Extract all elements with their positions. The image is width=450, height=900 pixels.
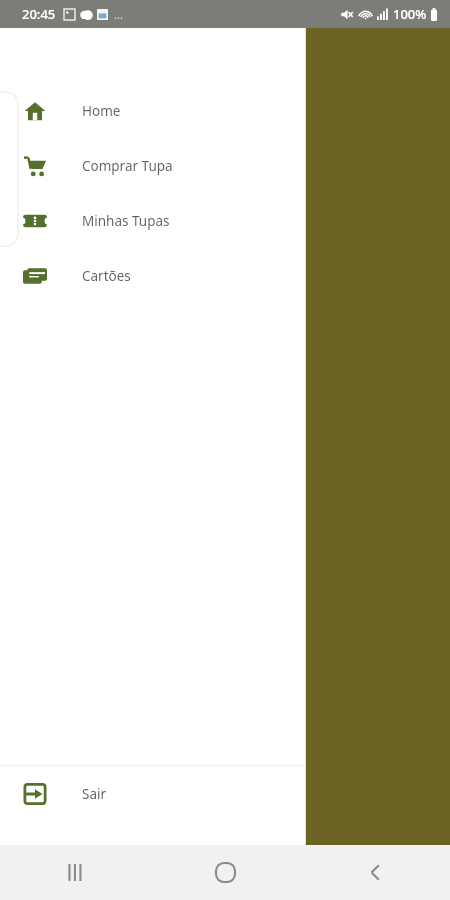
staticText: Comprar Tupa bbox=[82, 157, 173, 175]
staticText: Home bbox=[82, 102, 121, 120]
button[interactable]: Sair bbox=[0, 766, 306, 821]
staticText: Sair bbox=[82, 785, 107, 803]
button[interactable]: COMPRAR TUPA bbox=[20, 169, 150, 276]
staticText: O app que é seu cartão turista de Tupã, … bbox=[20, 775, 148, 811]
button[interactable]: Cartões bbox=[0, 248, 306, 303]
staticText: Cartões bbox=[82, 267, 131, 285]
button[interactable]: Recents bbox=[0, 845, 150, 900]
staticText: COMPRAR TUPA bbox=[42, 261, 129, 276]
button[interactable]: Home bbox=[0, 83, 306, 138]
staticText: ... bbox=[114, 7, 123, 22]
button[interactable]: Comprar Tupa bbox=[0, 138, 306, 193]
staticText: Minhas Tupas bbox=[82, 212, 170, 230]
button[interactable]: Back bbox=[300, 845, 450, 900]
staticText: 20:45 bbox=[22, 5, 56, 23]
staticText: 100% bbox=[393, 5, 427, 23]
button[interactable]: Home bbox=[150, 845, 300, 900]
button[interactable]: Minhas Tupas bbox=[0, 193, 306, 248]
